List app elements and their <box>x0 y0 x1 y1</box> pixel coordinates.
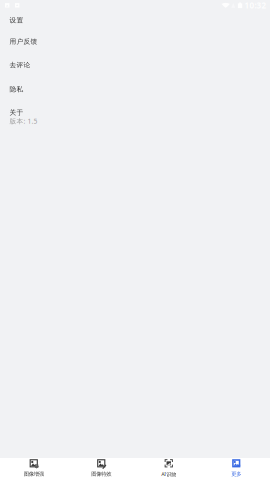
button[interactable]: 隐私 <box>0 85 270 108</box>
button[interactable]: 去评论 <box>0 61 270 85</box>
button[interactable]: 设置 <box>0 14 270 37</box>
staticText: 关于 <box>9 108 23 117</box>
button[interactable]: AI识物 <box>135 458 202 480</box>
staticText: 隐私 <box>9 85 23 93</box>
staticText: 更多 <box>231 471 241 477</box>
staticText: 图像特效 <box>91 471 111 477</box>
button[interactable]: 图像增强 <box>0 458 67 480</box>
staticText: 版本: 1.5 <box>9 117 37 126</box>
button[interactable]: 关于 <box>0 108 270 130</box>
staticText: 去评论 <box>9 61 30 69</box>
button[interactable]: 用户反馈 <box>0 37 270 61</box>
staticText: 图像增强 <box>24 471 44 477</box>
button[interactable]: 更多 <box>202 458 270 480</box>
staticText: 10:32 <box>244 0 266 11</box>
button[interactable]: 图像特效 <box>67 458 135 480</box>
staticText: AI识物 <box>161 471 176 478</box>
staticText: 用户反馈 <box>9 37 37 46</box>
staticText: 设置 <box>9 16 23 24</box>
